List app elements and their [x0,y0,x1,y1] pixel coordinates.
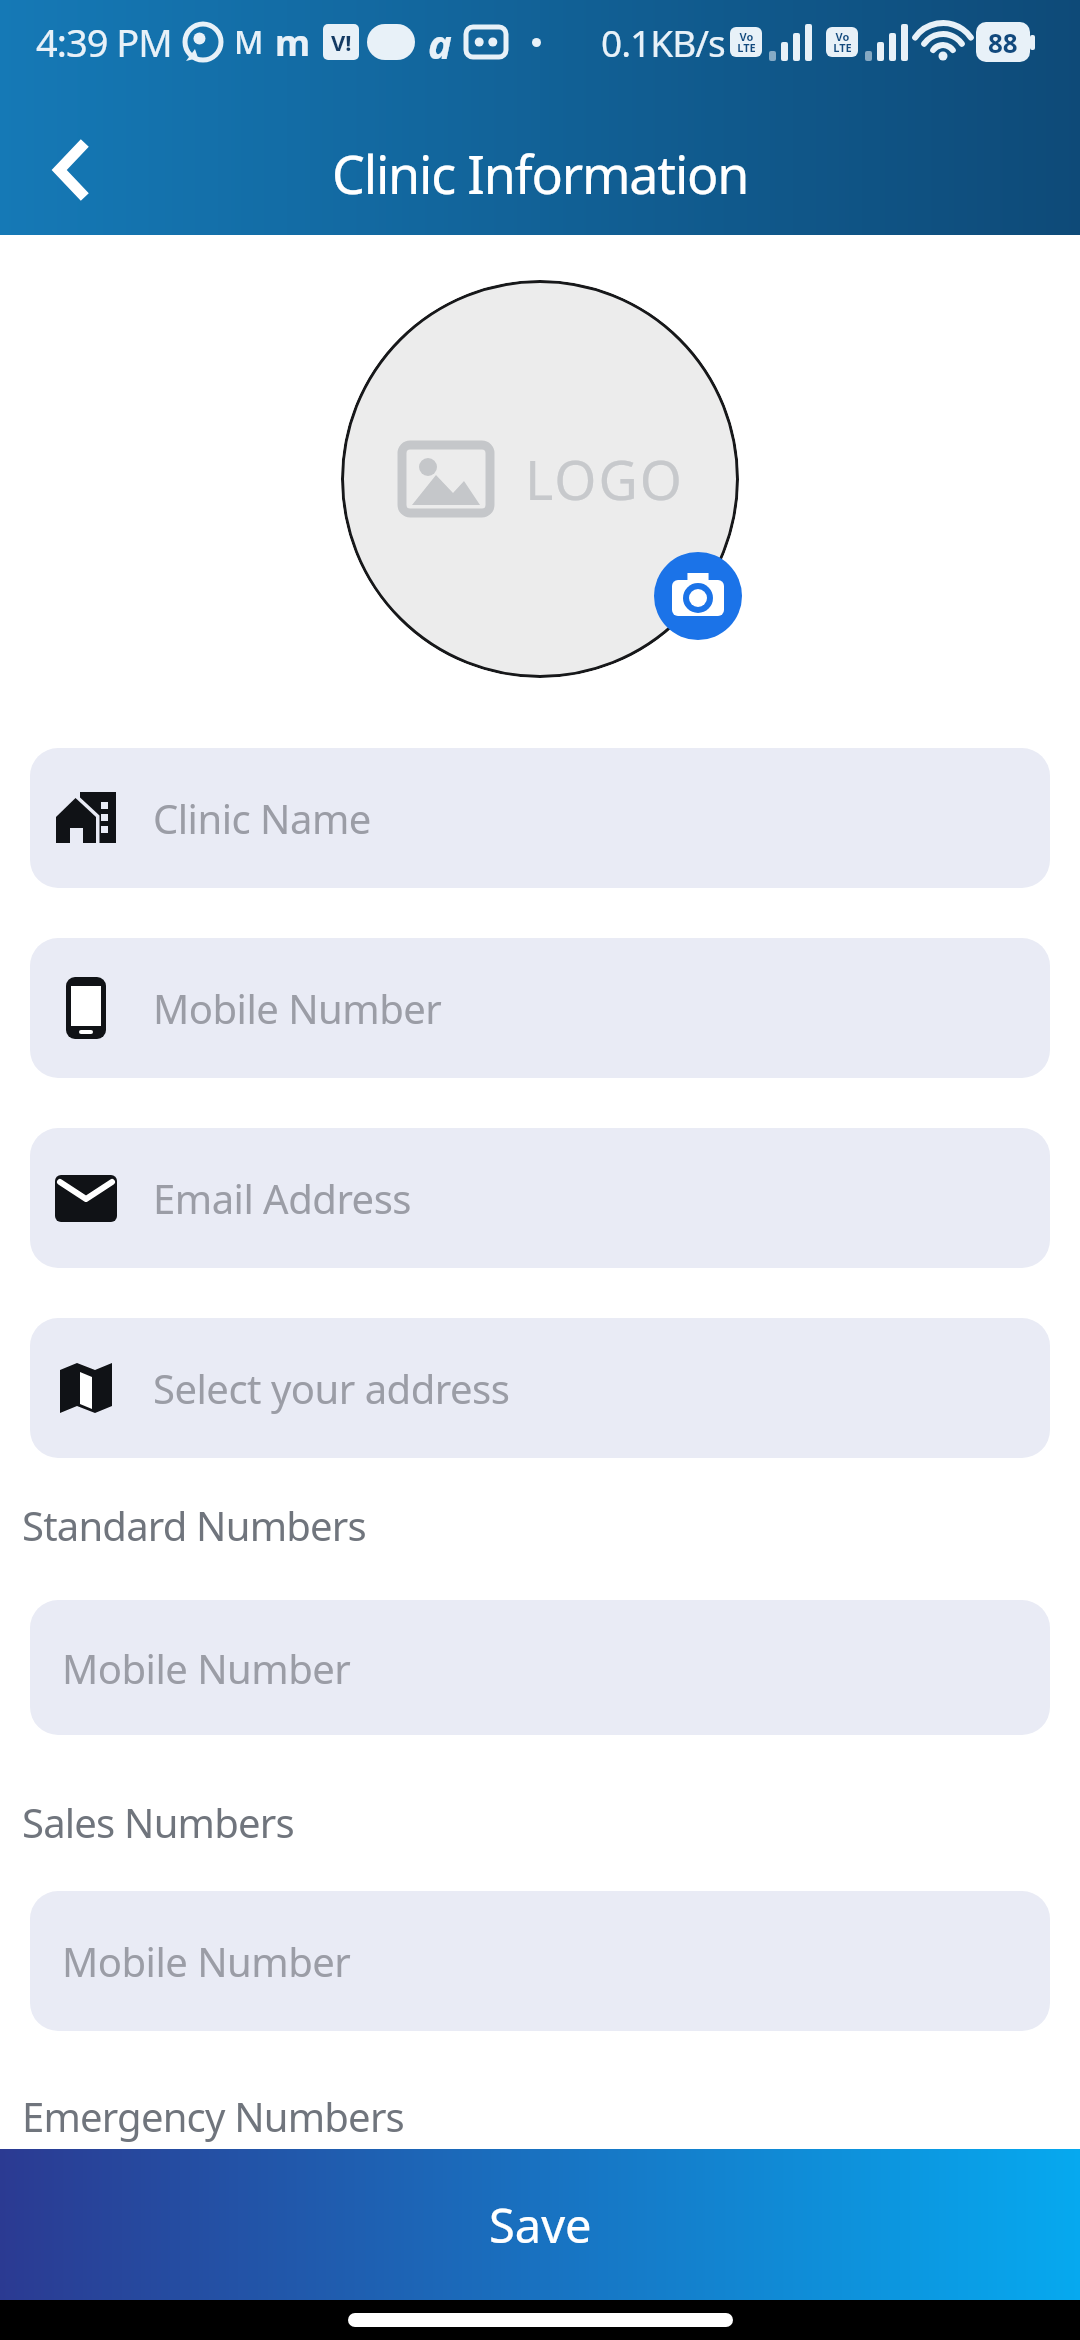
staticText: 88 [988,25,1018,60]
staticText: 4:39 PM [36,16,172,68]
staticText: Email Address [153,1171,411,1225]
staticText: Mobile Number [62,1641,351,1695]
staticText: 0.1KB/s [601,17,725,67]
staticText: Vo LTE [737,29,756,56]
button[interactable]: Mobile Number [30,1600,1050,1735]
button[interactable]: Mobile Number [30,1891,1050,2031]
staticText: m [275,18,311,67]
staticText: Vo LTE [833,29,852,56]
button[interactable]: Save [0,2149,1080,2300]
staticText: Sales Numbers [22,1795,294,1849]
staticText: Mobile Number [153,981,442,1035]
button[interactable]: Select your address [30,1318,1050,1458]
staticText: Emergency Numbers [22,2089,404,2143]
button[interactable] [34,132,110,208]
staticText: Clinic Information [332,138,749,209]
staticText: Save [489,2193,592,2257]
staticText: Standard Numbers [22,1498,366,1552]
button[interactable]: Mobile Number [30,938,1050,1078]
staticText: LOGO [525,442,684,516]
staticText: M [234,20,264,64]
staticText: Mobile Number [62,1934,351,1988]
staticText: Clinic Name [153,791,371,845]
button[interactable]: Email Address [30,1128,1050,1268]
button[interactable]: Clinic Name [30,748,1050,888]
staticText: Select your address [153,1361,510,1415]
staticText: a [428,16,452,68]
staticText: V! [331,27,352,57]
button[interactable] [654,552,742,640]
